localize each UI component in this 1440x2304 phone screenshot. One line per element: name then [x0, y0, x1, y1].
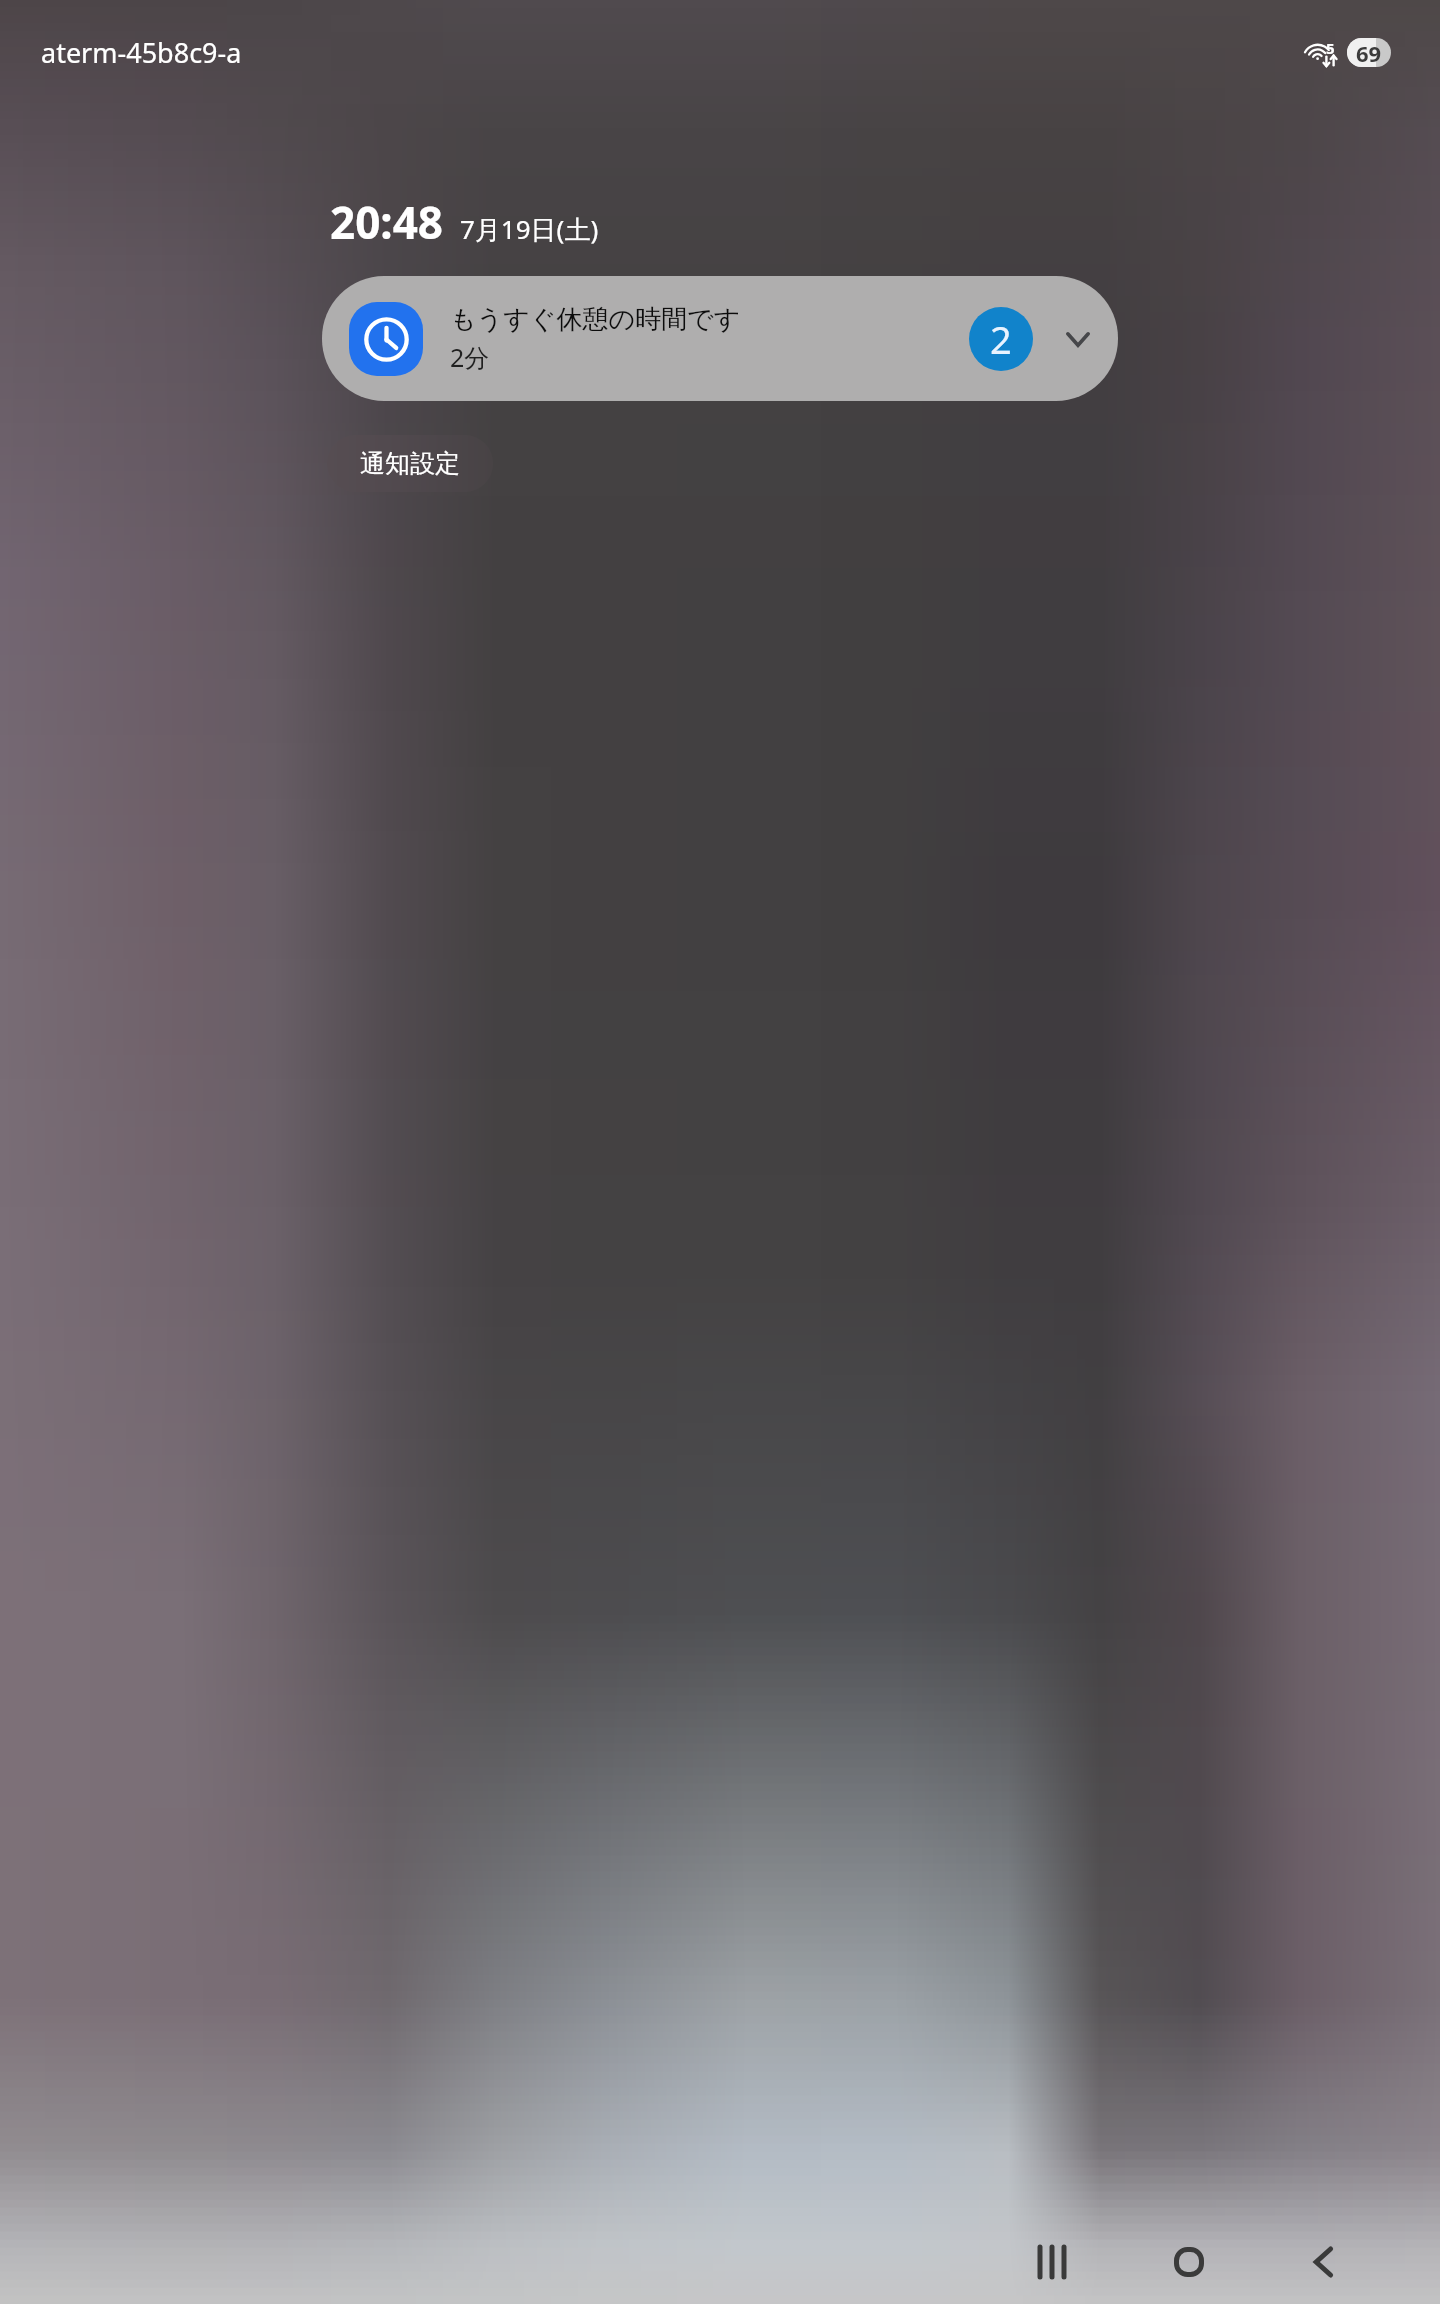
button[interactable]: もうすぐ休憩の時間です [322, 276, 1118, 401]
button[interactable]: Home [1149, 2222, 1229, 2302]
staticText: 2分 [450, 340, 490, 374]
staticText: 通知設定 [360, 448, 460, 479]
staticText: 5 [1326, 38, 1335, 58]
staticText: 20:48 [330, 192, 444, 252]
button[interactable]: Recent apps [1012, 2222, 1092, 2302]
staticText: aterm-45b8c9-a [41, 34, 242, 71]
button[interactable]: Expand notification [1046, 307, 1110, 371]
staticText: 69 [1356, 38, 1382, 67]
staticText: もうすぐ休憩の時間です [450, 303, 741, 336]
staticText: 2 [990, 313, 1012, 365]
button[interactable]: Back [1284, 2222, 1364, 2302]
button[interactable]: 通知設定 [327, 435, 493, 492]
staticText: 7月19日(土) [460, 211, 599, 247]
